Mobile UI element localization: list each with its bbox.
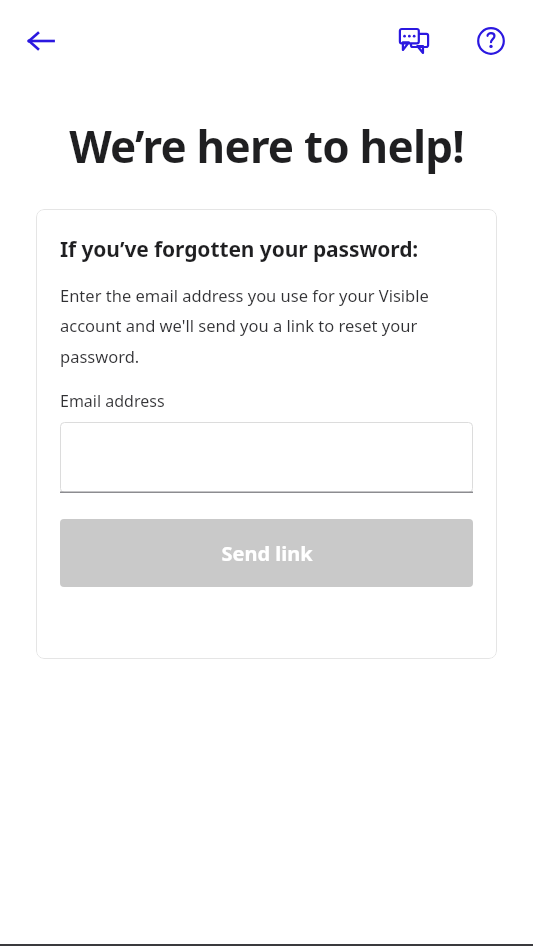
staticText: Email address	[60, 390, 473, 412]
button[interactable]: Back	[18, 18, 64, 64]
staticText: If you’ve forgotten your password:	[60, 235, 473, 264]
button[interactable]: Email address input	[60, 422, 473, 493]
button[interactable]: Send link	[60, 519, 473, 587]
button[interactable]: Help	[468, 18, 514, 64]
staticText: Send link	[221, 540, 313, 567]
button[interactable]: Chat	[391, 18, 437, 64]
staticText: Enter the email address you use for your…	[60, 284, 473, 368]
staticText: We’re here to help!	[0, 116, 533, 176]
